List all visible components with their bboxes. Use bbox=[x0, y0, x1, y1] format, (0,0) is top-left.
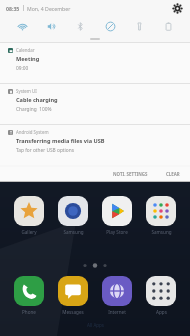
button[interactable]: Phone bbox=[8, 276, 50, 315]
staticText: Android System bbox=[16, 129, 49, 135]
button[interactable]: Flashlight bbox=[128, 17, 150, 35]
staticText: Meeting bbox=[16, 55, 40, 63]
staticText: Play Store bbox=[106, 229, 128, 235]
staticText: Phone bbox=[22, 309, 36, 315]
staticText: Messages bbox=[62, 309, 84, 315]
staticText: Transferring media files via USB bbox=[16, 137, 105, 145]
button[interactable]: Power saving bbox=[157, 17, 179, 35]
button[interactable]: Settings bbox=[170, 1, 184, 15]
button[interactable]: Gallery bbox=[8, 196, 50, 235]
staticText: Internet bbox=[108, 309, 126, 315]
button[interactable]: Internet bbox=[96, 276, 138, 315]
button[interactable]: Bluetooth bbox=[69, 17, 91, 35]
button[interactable]: System UI bbox=[0, 84, 190, 124]
staticText: Cable charging bbox=[16, 96, 58, 104]
button[interactable]: NOTI. SETTINGS bbox=[109, 169, 152, 179]
button[interactable]: Samsung bbox=[52, 196, 94, 235]
staticText: Mon, 4 December bbox=[27, 5, 71, 12]
staticText: Charging 100% bbox=[16, 106, 52, 113]
button[interactable]: Samsung bbox=[140, 196, 182, 235]
staticText: Samsung bbox=[63, 229, 84, 235]
button[interactable]: CLEAR bbox=[162, 169, 184, 179]
staticText: Calendar bbox=[16, 47, 35, 53]
staticText: Apps bbox=[156, 309, 167, 315]
button[interactable]: Play Store bbox=[96, 196, 138, 235]
staticText: 08:35 bbox=[6, 5, 20, 12]
staticText: 09:00 bbox=[16, 65, 29, 72]
staticText: All Apps bbox=[87, 322, 104, 328]
button[interactable]: Do not disturb bbox=[99, 17, 121, 35]
button[interactable]: Android System bbox=[0, 125, 190, 165]
button[interactable]: Wi-Fi bbox=[11, 17, 33, 35]
staticText: Gallery bbox=[21, 229, 37, 235]
button[interactable]: Sound bbox=[40, 17, 62, 35]
staticText: CLEAR bbox=[166, 171, 180, 177]
button[interactable]: Apps bbox=[140, 276, 182, 315]
staticText: System UI bbox=[16, 88, 37, 94]
staticText: Tap for other USB options bbox=[16, 147, 74, 154]
staticText: NOTI. SETTINGS bbox=[113, 171, 148, 177]
staticText: Samsung bbox=[151, 229, 172, 235]
button[interactable]: Calendar bbox=[0, 43, 190, 83]
button[interactable]: Messages bbox=[52, 276, 94, 315]
